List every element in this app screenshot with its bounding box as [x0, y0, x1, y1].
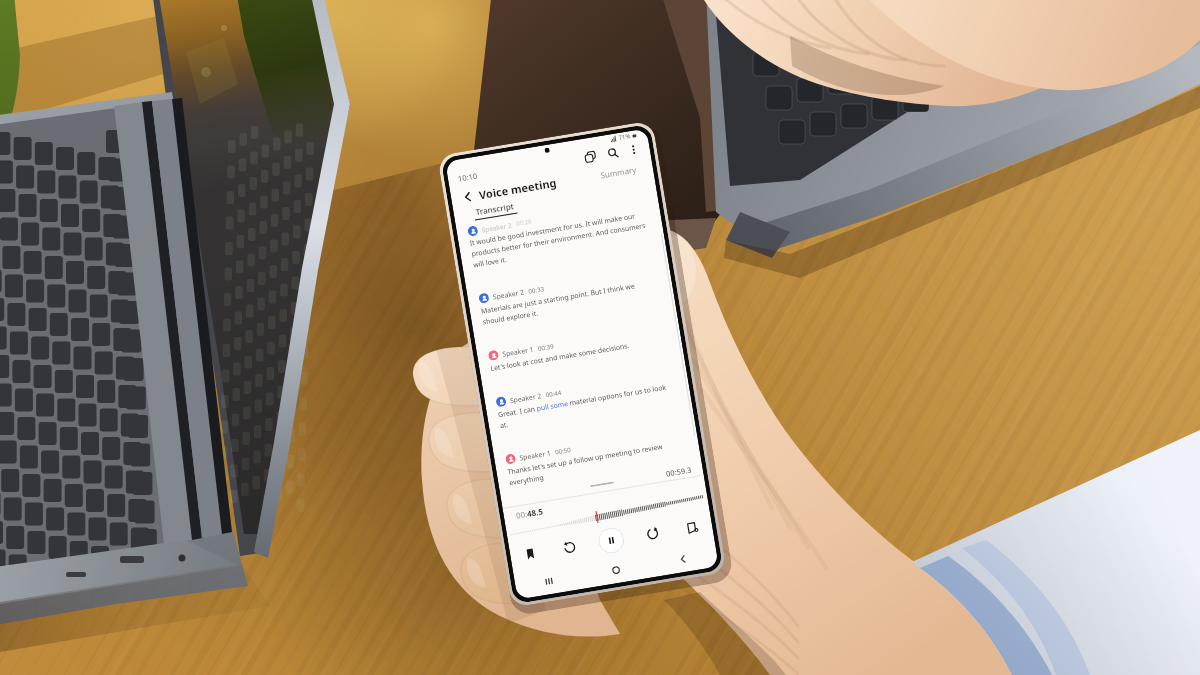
button[interactable]: Back: [669, 545, 697, 573]
staticText: Summary: [599, 163, 638, 180]
button[interactable]: Translate: [581, 148, 599, 166]
staticText: 00:39: [537, 341, 554, 352]
staticText: 10:10: [457, 171, 479, 184]
staticText: 00:44: [545, 388, 562, 398]
button[interactable]: Transcript: [473, 200, 518, 224]
button[interactable]: Rewind 5 seconds: [556, 534, 584, 561]
staticText: 00:33: [528, 284, 545, 295]
staticText: Let's look at cost and make some decisio…: [490, 341, 630, 373]
button[interactable]: Recent apps: [535, 567, 563, 595]
button[interactable]: Pause: [596, 526, 626, 555]
staticText: 00:50: [554, 445, 571, 455]
button[interactable]: Speaker 2: [495, 368, 677, 430]
button[interactable]: Speaker 1: [505, 426, 687, 487]
button[interactable]: Home: [602, 556, 630, 584]
staticText: 71%: [618, 132, 631, 142]
button[interactable]: Bookmark: [518, 541, 543, 567]
staticText: Speaker 2: [492, 287, 525, 302]
button[interactable]: Add note: [679, 515, 705, 540]
staticText: Speaker 2: [509, 391, 542, 405]
staticText: It would be good investment for us. It w…: [469, 209, 651, 269]
staticText: Transcript: [475, 200, 515, 217]
staticText: 00:28: [516, 217, 533, 228]
staticText: 00:48.5: [515, 505, 544, 521]
button[interactable]: More options: [626, 142, 642, 158]
button[interactable]: Speaker 2: [478, 265, 660, 327]
button[interactable]: Summary: [595, 160, 642, 184]
staticText: 00:59.3: [665, 465, 692, 479]
staticText: Great. I can pull some material options …: [497, 381, 677, 430]
button[interactable]: Speaker 1: [488, 322, 668, 373]
staticText: Speaker 1: [519, 448, 552, 462]
staticText: Thanks let's set up a follow up meeting …: [507, 438, 687, 487]
staticText: Voice meeting: [478, 175, 558, 202]
button[interactable]: Search: [604, 144, 622, 162]
staticText: Speaker 2: [481, 221, 513, 234]
staticText: Speaker 1: [502, 345, 535, 359]
staticText: Materials are just a starting point. But…: [480, 278, 660, 327]
button[interactable]: Forward 5 seconds: [639, 520, 666, 547]
button[interactable]: Back: [457, 186, 477, 207]
